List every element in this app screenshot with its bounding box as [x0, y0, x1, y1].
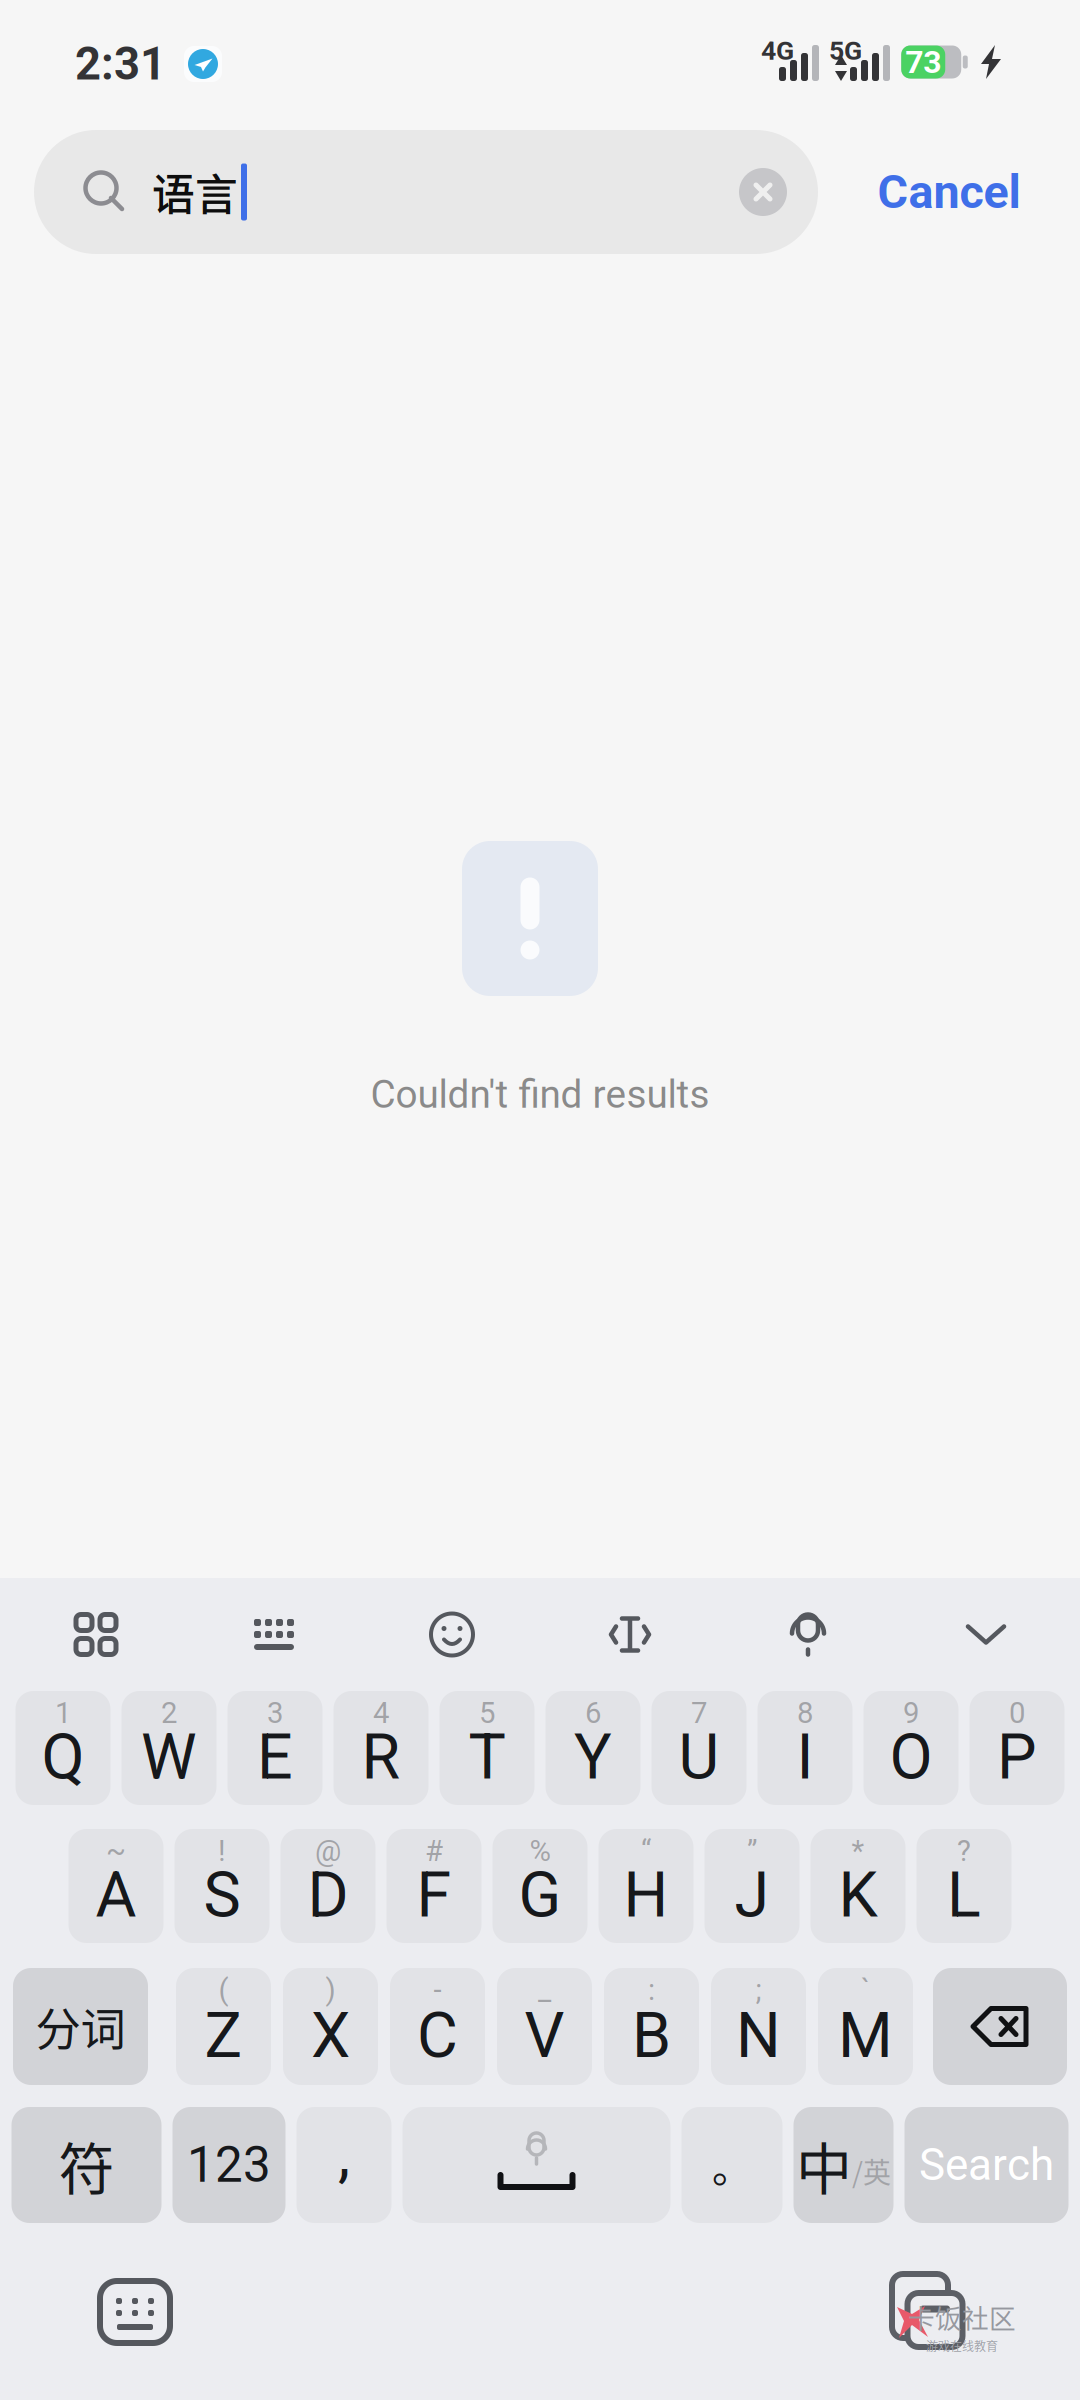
- staticText: (: [218, 1973, 228, 2007]
- staticText: !: [218, 1834, 226, 1868]
- button[interactable]: Voice input: [719, 1578, 897, 1691]
- staticText: 符: [58, 2124, 114, 2206]
- button[interactable]: 0: [969, 1691, 1064, 1805]
- staticText: A: [95, 1858, 136, 1932]
- staticText: Search: [919, 2139, 1054, 2191]
- button[interactable]: 123: [172, 2107, 285, 2223]
- button[interactable]: 3: [227, 1691, 322, 1805]
- staticText: F: [416, 1858, 451, 1932]
- staticText: 4G: [761, 35, 794, 66]
- button[interactable]: [933, 1968, 1067, 2085]
- staticText: K: [838, 1858, 877, 1932]
- staticText: 中: [796, 2124, 852, 2206]
- button[interactable]: Hide keyboard: [897, 1578, 1075, 1691]
- staticText: N: [736, 1999, 781, 2072]
- staticText: ): [325, 1973, 335, 2007]
- button[interactable]: Search: [904, 2107, 1068, 2223]
- button[interactable]: ?: [916, 1829, 1011, 1943]
- staticText: P: [997, 1720, 1037, 1794]
- staticText: 游戏在线教育: [926, 2337, 998, 2354]
- staticText: 5G: [829, 35, 862, 66]
- button[interactable]: “: [598, 1829, 693, 1943]
- button[interactable]: ”: [704, 1829, 799, 1943]
- staticText: 6: [585, 1696, 601, 1730]
- button[interactable]: ;: [711, 1968, 806, 2085]
- staticText: Y: [574, 1720, 612, 1794]
- button[interactable]: Keyboard layout: [185, 1578, 363, 1691]
- staticText: 5: [479, 1696, 495, 1730]
- staticText: W: [141, 1720, 197, 1794]
- staticText: -: [433, 1973, 441, 2007]
- button[interactable]: 7: [651, 1691, 746, 1805]
- staticText: *: [851, 1834, 864, 1868]
- staticText: _: [538, 1973, 551, 2007]
- staticText: L: [947, 1858, 981, 1932]
- button[interactable]: Move cursor: [541, 1578, 719, 1691]
- staticText: 123: [187, 2136, 271, 2194]
- staticText: 2: [161, 1696, 177, 1730]
- staticText: ?: [957, 1834, 971, 1868]
- button[interactable]: Switch keyboard: [100, 2281, 170, 2343]
- staticText: Couldn't find results: [370, 1072, 709, 1117]
- button[interactable]: 2: [121, 1691, 216, 1805]
- button[interactable]: _: [497, 1968, 592, 2085]
- button[interactable]: 1: [15, 1691, 110, 1805]
- button[interactable]: @: [280, 1829, 375, 1943]
- staticText: M: [838, 1999, 893, 2072]
- staticText: V: [524, 1999, 564, 2072]
- button[interactable]: ~: [68, 1829, 163, 1943]
- button[interactable]: :: [604, 1968, 699, 2085]
- button[interactable]: *: [810, 1829, 905, 1943]
- staticText: 1: [55, 1696, 71, 1730]
- staticText: J: [734, 1858, 769, 1932]
- button[interactable]: `: [818, 1968, 913, 2085]
- staticText: X: [311, 1999, 350, 2072]
- staticText: S: [203, 1858, 240, 1932]
- button[interactable]: #: [386, 1829, 481, 1943]
- staticText: R: [361, 1720, 400, 1794]
- button[interactable]: ,: [296, 2107, 391, 2223]
- button[interactable]: 。: [681, 2107, 782, 2223]
- staticText: 73: [905, 43, 941, 81]
- button[interactable]: ): [283, 1968, 378, 2085]
- staticText: G: [518, 1858, 561, 1932]
- button[interactable]: Cancel: [818, 130, 1080, 254]
- button[interactable]: [402, 2107, 670, 2223]
- button[interactable]: 中: [793, 2107, 893, 2223]
- staticText: :: [648, 1973, 655, 2007]
- staticText: 卡饭社区: [908, 2297, 1016, 2336]
- button[interactable]: 9: [863, 1691, 958, 1805]
- staticText: 0: [1009, 1696, 1025, 1730]
- staticText: O: [889, 1720, 932, 1794]
- button[interactable]: 6: [545, 1691, 640, 1805]
- staticText: ,: [338, 2119, 350, 2191]
- staticText: U: [678, 1720, 719, 1794]
- button[interactable]: 8: [757, 1691, 852, 1805]
- button[interactable]: 符: [11, 2107, 161, 2223]
- button[interactable]: Emoji: [363, 1578, 541, 1691]
- button[interactable]: Panel: [7, 1578, 185, 1691]
- button[interactable]: 5: [439, 1691, 534, 1805]
- staticText: B: [632, 1999, 671, 2072]
- button[interactable]: 4: [333, 1691, 428, 1805]
- staticText: T: [468, 1720, 505, 1794]
- staticText: 。: [712, 2136, 752, 2194]
- staticText: ”: [747, 1834, 757, 1868]
- staticText: Q: [41, 1720, 84, 1794]
- button[interactable]: -: [390, 1968, 485, 2085]
- staticText: 3: [267, 1696, 283, 1730]
- button[interactable]: 语言: [34, 130, 818, 254]
- staticText: Cancel: [877, 165, 1020, 219]
- staticText: 2:31: [75, 37, 166, 90]
- staticText: 语言: [152, 161, 238, 223]
- staticText: 7: [691, 1696, 707, 1730]
- staticText: /英: [852, 2151, 891, 2191]
- staticText: C: [417, 1999, 458, 2072]
- staticText: E: [257, 1720, 293, 1794]
- staticText: 9: [903, 1696, 919, 1730]
- button[interactable]: (: [176, 1968, 271, 2085]
- staticText: @: [315, 1834, 341, 1868]
- button[interactable]: %: [492, 1829, 587, 1943]
- button[interactable]: 分词: [13, 1968, 148, 2085]
- button[interactable]: !: [174, 1829, 269, 1943]
